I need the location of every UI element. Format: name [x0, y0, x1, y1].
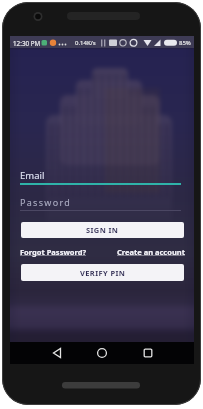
button[interactable]: Create an account: [117, 247, 185, 257]
button[interactable]: [140, 345, 156, 361]
staticText: Email: [20, 169, 45, 182]
button[interactable]: Email: [20, 169, 183, 187]
staticText: 85%: [179, 39, 191, 47]
button[interactable]: Password: [20, 196, 183, 214]
staticText: VERIFY PIN: [80, 268, 126, 278]
staticText: SIGN IN: [86, 225, 119, 235]
button[interactable]: [94, 345, 110, 361]
button[interactable]: Forgot Password?: [20, 247, 87, 257]
staticText: 12:30 PM: [13, 39, 41, 48]
button[interactable]: VERIFY PIN: [21, 264, 184, 281]
button[interactable]: SIGN IN: [21, 222, 184, 238]
staticText: 0.14K/s: [75, 39, 96, 47]
staticText: Password: [20, 196, 72, 208]
button[interactable]: [49, 345, 65, 361]
